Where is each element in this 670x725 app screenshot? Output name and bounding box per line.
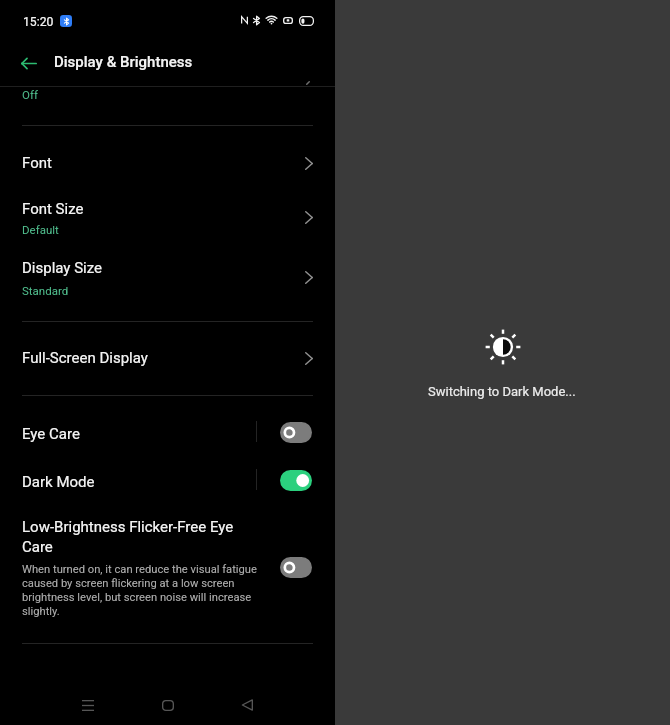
button[interactable]: Recent apps xyxy=(68,685,108,725)
button[interactable]: Home xyxy=(148,685,188,725)
button[interactable]: Low-Brightness Flicker-Free Eye Care xyxy=(0,500,335,640)
staticText: Font xyxy=(22,154,52,172)
staticText: Display Size xyxy=(22,259,103,277)
button[interactable]: Font Size xyxy=(0,187,335,244)
button[interactable]: Dark Mode xyxy=(0,453,335,499)
button[interactable]: Navigate up xyxy=(8,42,50,84)
button[interactable]: Display Size xyxy=(0,246,335,303)
staticText: Switching to Dark Mode... xyxy=(428,384,576,399)
staticText: Off xyxy=(22,88,38,101)
staticText: Low-Brightness Flicker-Free Eye Care xyxy=(22,518,243,555)
button[interactable]: Back xyxy=(227,685,267,725)
staticText: When turned on, it can reduce the visual… xyxy=(22,563,263,618)
staticText: Dark Mode xyxy=(22,473,95,491)
staticText: Full-Screen Display xyxy=(22,349,148,367)
staticText: Default xyxy=(22,223,59,236)
button[interactable]: Font xyxy=(0,133,335,187)
staticText: Standard xyxy=(22,284,69,297)
staticText: Display & Brightness xyxy=(54,53,193,71)
staticText: Eye Care xyxy=(22,425,80,443)
button[interactable]: Eye Care xyxy=(0,405,335,451)
button[interactable]: Switch off xyxy=(280,422,312,443)
staticText: Font Size xyxy=(22,200,84,218)
button[interactable]: Off xyxy=(0,70,335,120)
button[interactable]: Switch on xyxy=(280,470,312,491)
staticText: 15:20 xyxy=(23,15,54,29)
button[interactable]: Full-Screen Display xyxy=(0,326,335,382)
button[interactable]: Switch off xyxy=(280,557,312,578)
